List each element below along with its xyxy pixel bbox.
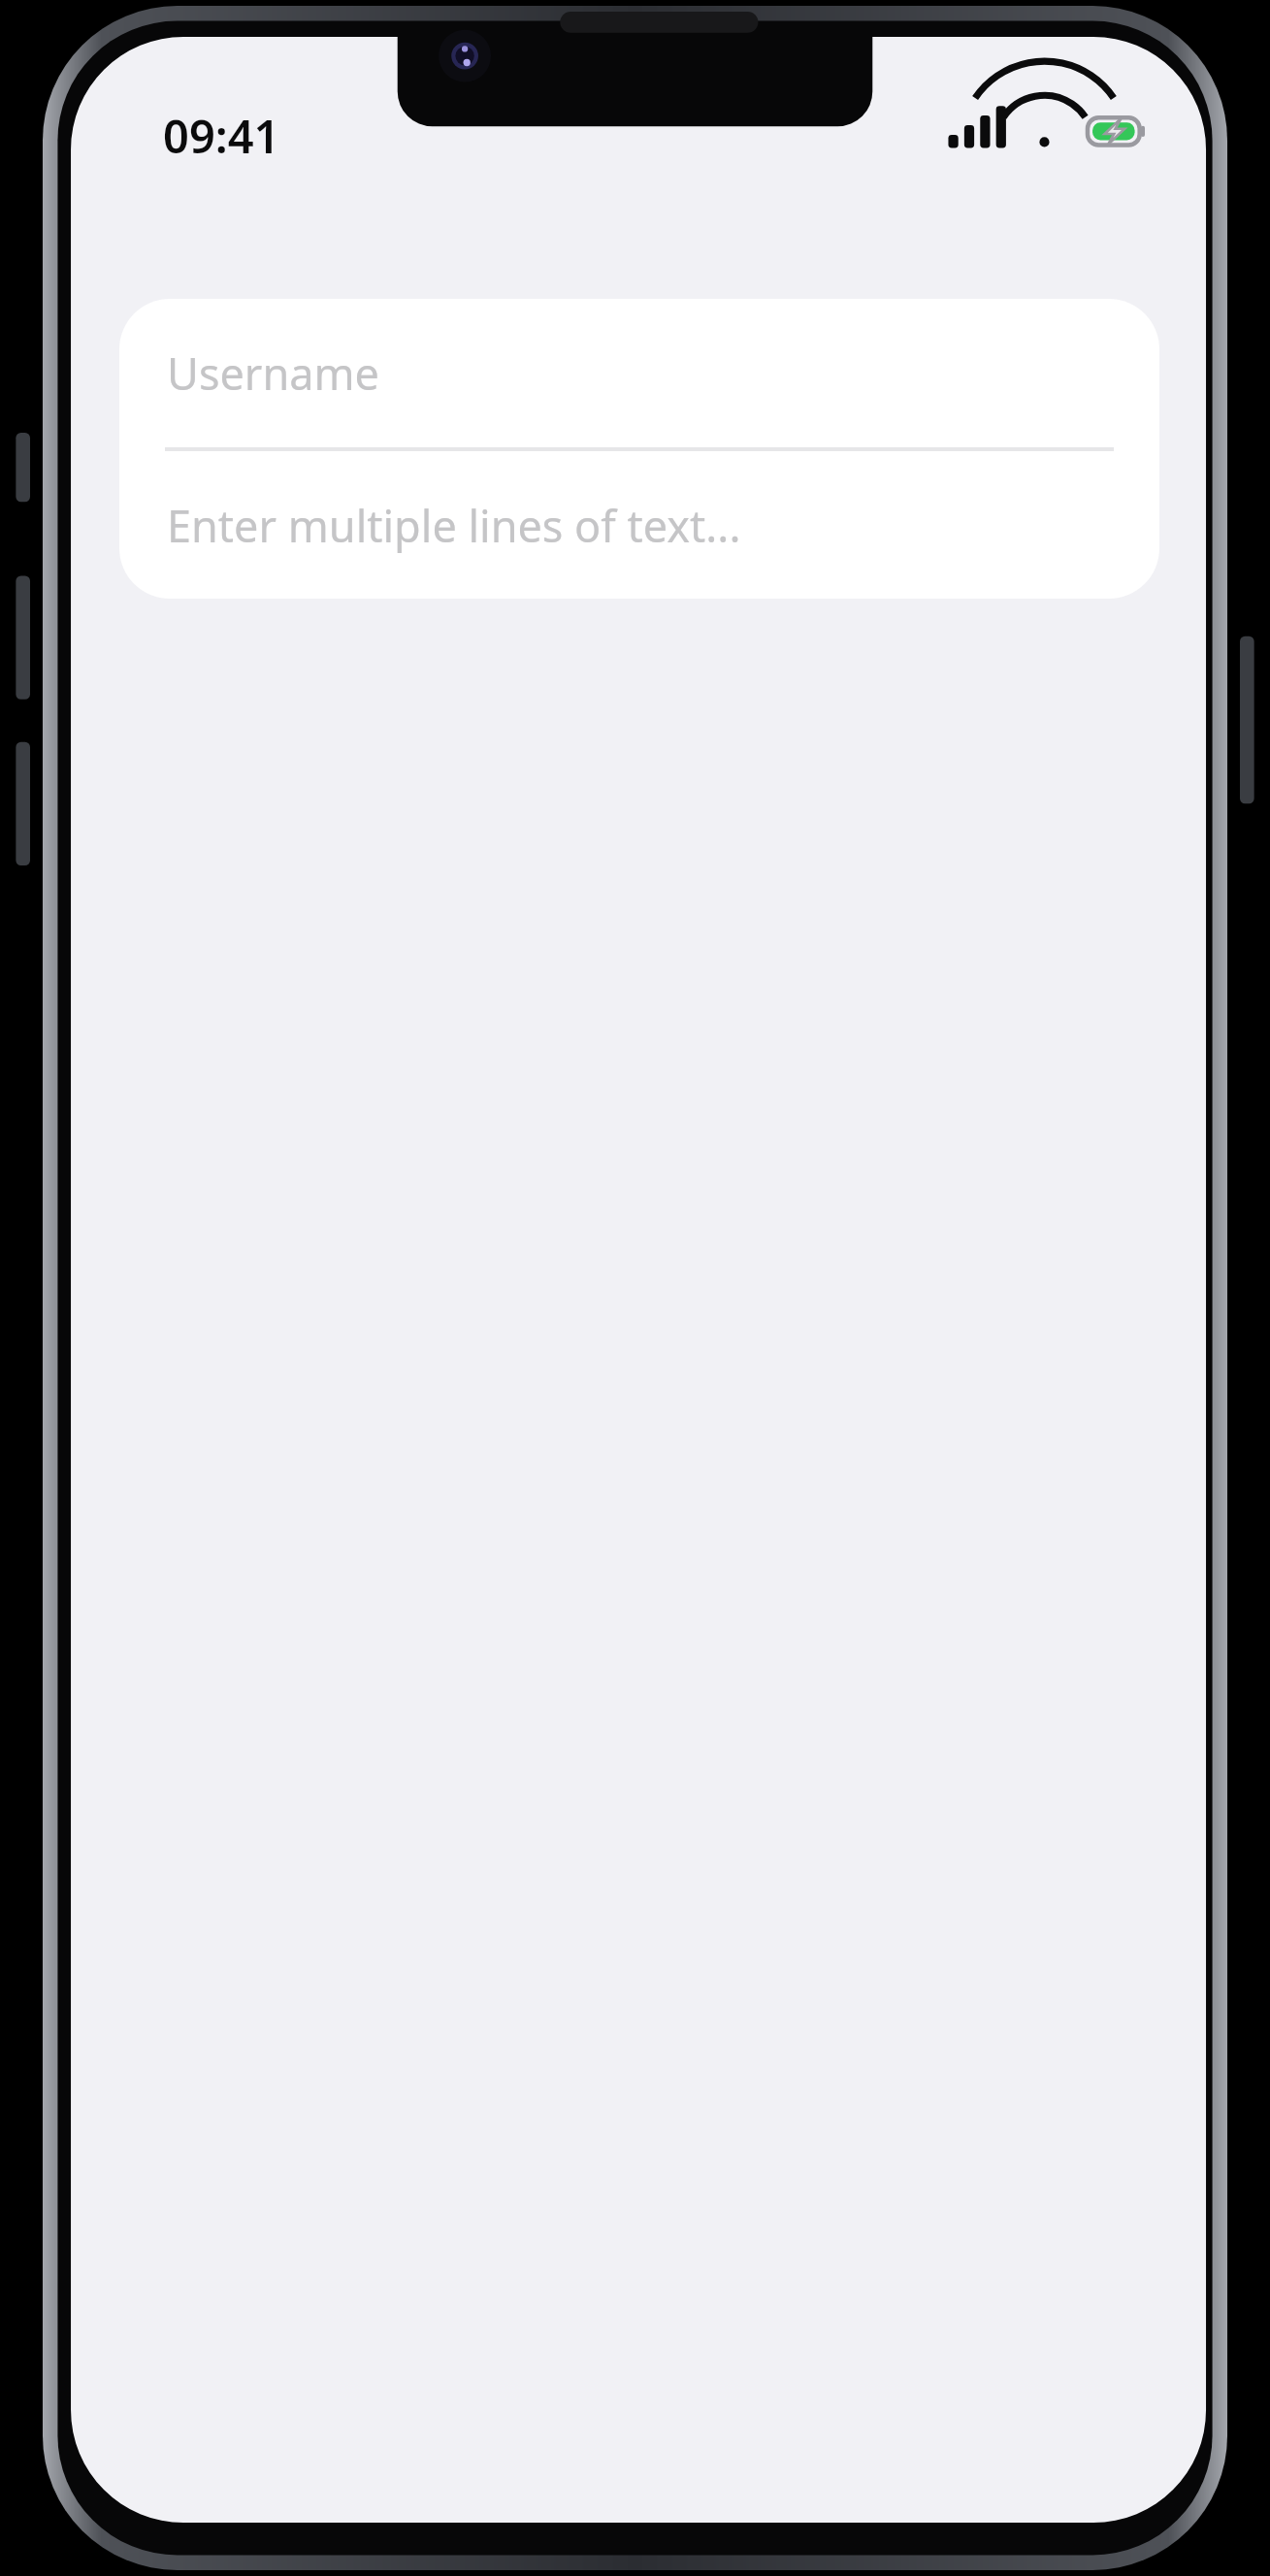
other: Signal, Wi-Fi and battery status [946,100,1145,160]
staticText: 09:41 [163,105,280,167]
button[interactable]: Username [119,299,1159,447]
button[interactable]: Enter multiple lines of text... [119,451,1159,599]
staticText: Enter multiple lines of text... [167,496,741,555]
staticText: Username [167,343,379,403]
